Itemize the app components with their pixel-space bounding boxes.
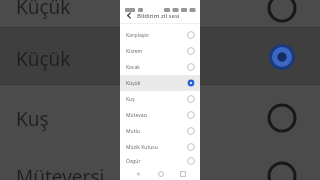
button[interactable]: Kocak [120, 59, 200, 75]
button[interactable]: Müzik Kutusu [120, 139, 200, 155]
button[interactable]: Özgür [120, 155, 200, 167]
staticText: Kuş [126, 96, 187, 103]
button[interactable]: Back [124, 10, 135, 21]
staticText: Küçük [126, 80, 187, 87]
staticText: Kocak [126, 64, 187, 71]
button[interactable]: Mütevazı [120, 107, 200, 123]
staticText: Bildirim zil sesi [137, 12, 180, 20]
button[interactable]: Recent apps [177, 168, 188, 179]
button[interactable]: Kuş [120, 91, 200, 107]
staticText: Karşılaştır [126, 32, 187, 39]
staticText: Küçük [16, 0, 71, 20]
button[interactable]: Home [155, 168, 166, 179]
staticText: Mutlu [126, 128, 187, 135]
button[interactable]: Back [132, 168, 143, 179]
staticText: Küçük [16, 46, 71, 72]
staticText: Mütevazı [126, 112, 187, 119]
staticText: Müteversi [16, 164, 105, 180]
staticText: Kuş [16, 106, 49, 132]
staticText: Kisrem [126, 48, 187, 55]
staticText: Müzik Kutusu [126, 144, 187, 151]
button[interactable]: Küçük [120, 75, 200, 91]
button[interactable]: Kisrem [120, 43, 200, 59]
button[interactable]: Karşılaştır [120, 27, 200, 43]
staticText: Özgür [126, 158, 187, 165]
button[interactable]: Mutlu [120, 123, 200, 139]
